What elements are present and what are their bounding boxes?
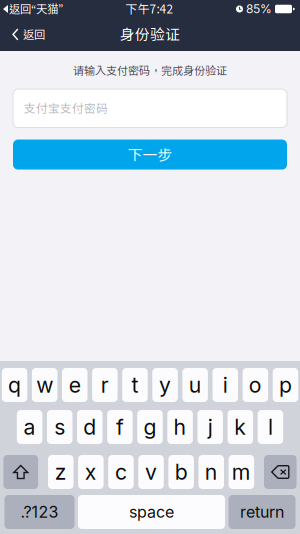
staticText: d [83,414,96,440]
staticText: c [115,459,127,485]
staticText: a [24,414,36,440]
button[interactable]: k [227,410,253,444]
staticText: g [143,414,156,440]
staticText: 支付宝支付密码 [24,101,108,115]
button[interactable]: c [108,455,134,489]
staticText: 返回“天猫” [9,2,63,16]
button[interactable]: b [168,455,194,489]
staticText: space [129,502,174,522]
button[interactable]: Delete [264,455,297,489]
staticText: r [101,372,109,398]
button[interactable]: s [47,410,72,444]
staticText: e [69,372,81,398]
button[interactable]: u [182,368,208,402]
staticText: h [174,414,187,440]
button[interactable]: r [92,368,118,402]
button[interactable]: f [107,410,133,444]
staticText: l [268,414,273,440]
staticText: m [232,459,251,485]
button[interactable]: return [228,495,295,529]
button[interactable]: p [273,368,298,402]
staticText: s [54,414,65,440]
button[interactable]: m [229,455,254,489]
staticText: p [279,372,292,398]
button[interactable]: i [212,368,238,402]
staticText: i [223,372,228,398]
staticText: x [85,459,97,485]
staticText: v [145,459,157,485]
button[interactable]: g [137,410,163,444]
staticText: q [8,372,21,398]
button[interactable]: h [167,410,193,444]
button[interactable]: x [78,455,104,489]
button[interactable]: e [62,368,87,402]
button[interactable]: .?123 [4,495,74,529]
button[interactable]: Shift [3,455,38,489]
staticText: j [208,414,213,440]
staticText: 返回 [23,28,45,41]
staticText: .?123 [20,502,58,522]
staticText: w [36,372,53,398]
button[interactable]: space [78,495,225,529]
button[interactable]: l [258,410,283,444]
button[interactable]: 下一步 [0,140,300,170]
staticText: k [234,414,246,440]
staticText: f [116,414,124,440]
button[interactable]: q [2,368,27,402]
button[interactable]: a [17,410,42,444]
staticText: 请输入支付密码，完成身份验证 [73,64,227,77]
button[interactable]: j [197,410,223,444]
button[interactable]: z [48,455,73,489]
staticText: u [189,372,202,398]
button[interactable]: n [198,455,224,489]
staticText: z [55,459,67,485]
staticText: b [175,459,188,485]
staticText: 下一步 [127,146,172,163]
staticText: y [159,372,171,398]
button[interactable]: 返回 [0,18,55,51]
button[interactable]: o [243,368,268,402]
staticText: 下午7:42 [125,2,173,16]
button[interactable]: w [32,368,57,402]
button[interactable]: d [77,410,102,444]
staticText: 身份验证 [120,26,180,43]
staticText: n [205,459,218,485]
staticText: 85% [246,2,272,16]
staticText: return [240,502,284,522]
button[interactable]: t [122,368,148,402]
button[interactable]: y [152,368,178,402]
staticText: o [249,372,262,398]
staticText: t [131,372,138,398]
button[interactable]: v [138,455,164,489]
